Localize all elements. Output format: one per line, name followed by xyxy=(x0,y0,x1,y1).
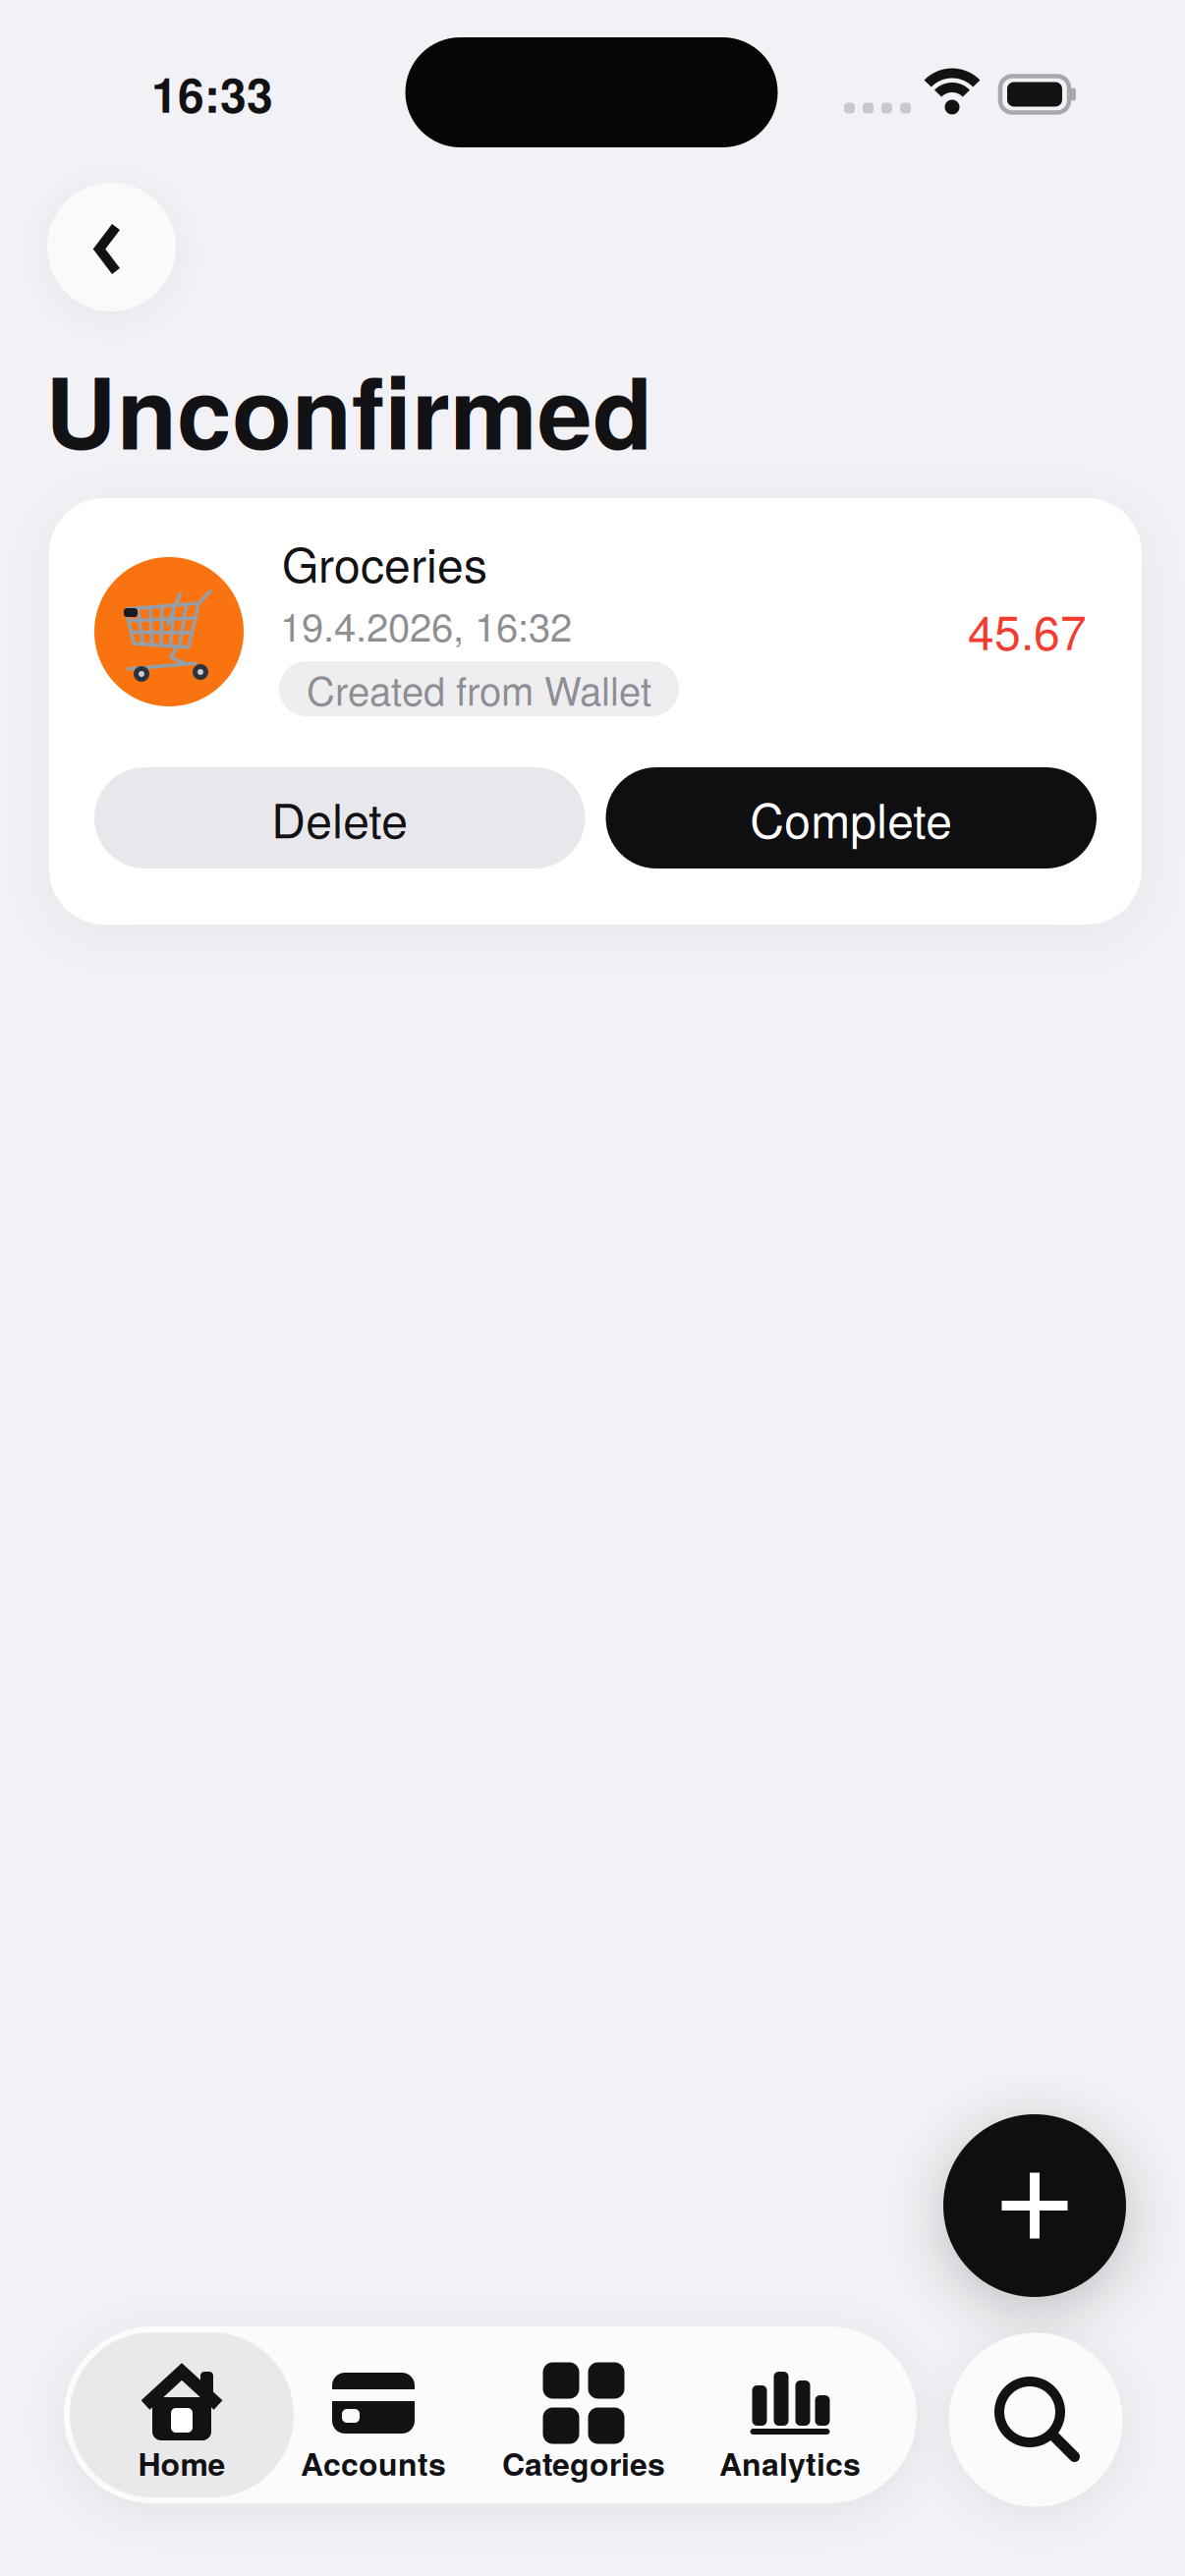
staticText: Delete xyxy=(271,784,408,852)
button[interactable]: Home xyxy=(70,2332,294,2497)
staticText: Created from Wallet xyxy=(307,661,651,717)
button[interactable]: Analytics xyxy=(672,2332,908,2497)
staticText: Home xyxy=(138,2441,226,2486)
staticText: 45.67 xyxy=(968,596,1087,663)
staticText: 16:33 xyxy=(151,60,273,127)
button[interactable]: Delete xyxy=(94,767,585,868)
button[interactable]: Accounts xyxy=(255,2332,491,2497)
staticText: Complete xyxy=(750,784,952,852)
button[interactable]: Add xyxy=(943,2114,1126,2297)
staticText: Unconfirmed xyxy=(45,339,652,480)
staticText: Analytics xyxy=(719,2441,861,2486)
button[interactable]: Search xyxy=(949,2333,1123,2507)
staticText: Categories xyxy=(502,2441,665,2486)
button[interactable]: Categories xyxy=(466,2332,702,2497)
staticText: 19.4.2026, 16:32 xyxy=(280,596,572,653)
button[interactable]: Back xyxy=(47,183,176,311)
staticText: Accounts xyxy=(301,2441,446,2486)
button[interactable]: Complete xyxy=(606,767,1097,868)
staticText: Groceries xyxy=(282,529,487,596)
